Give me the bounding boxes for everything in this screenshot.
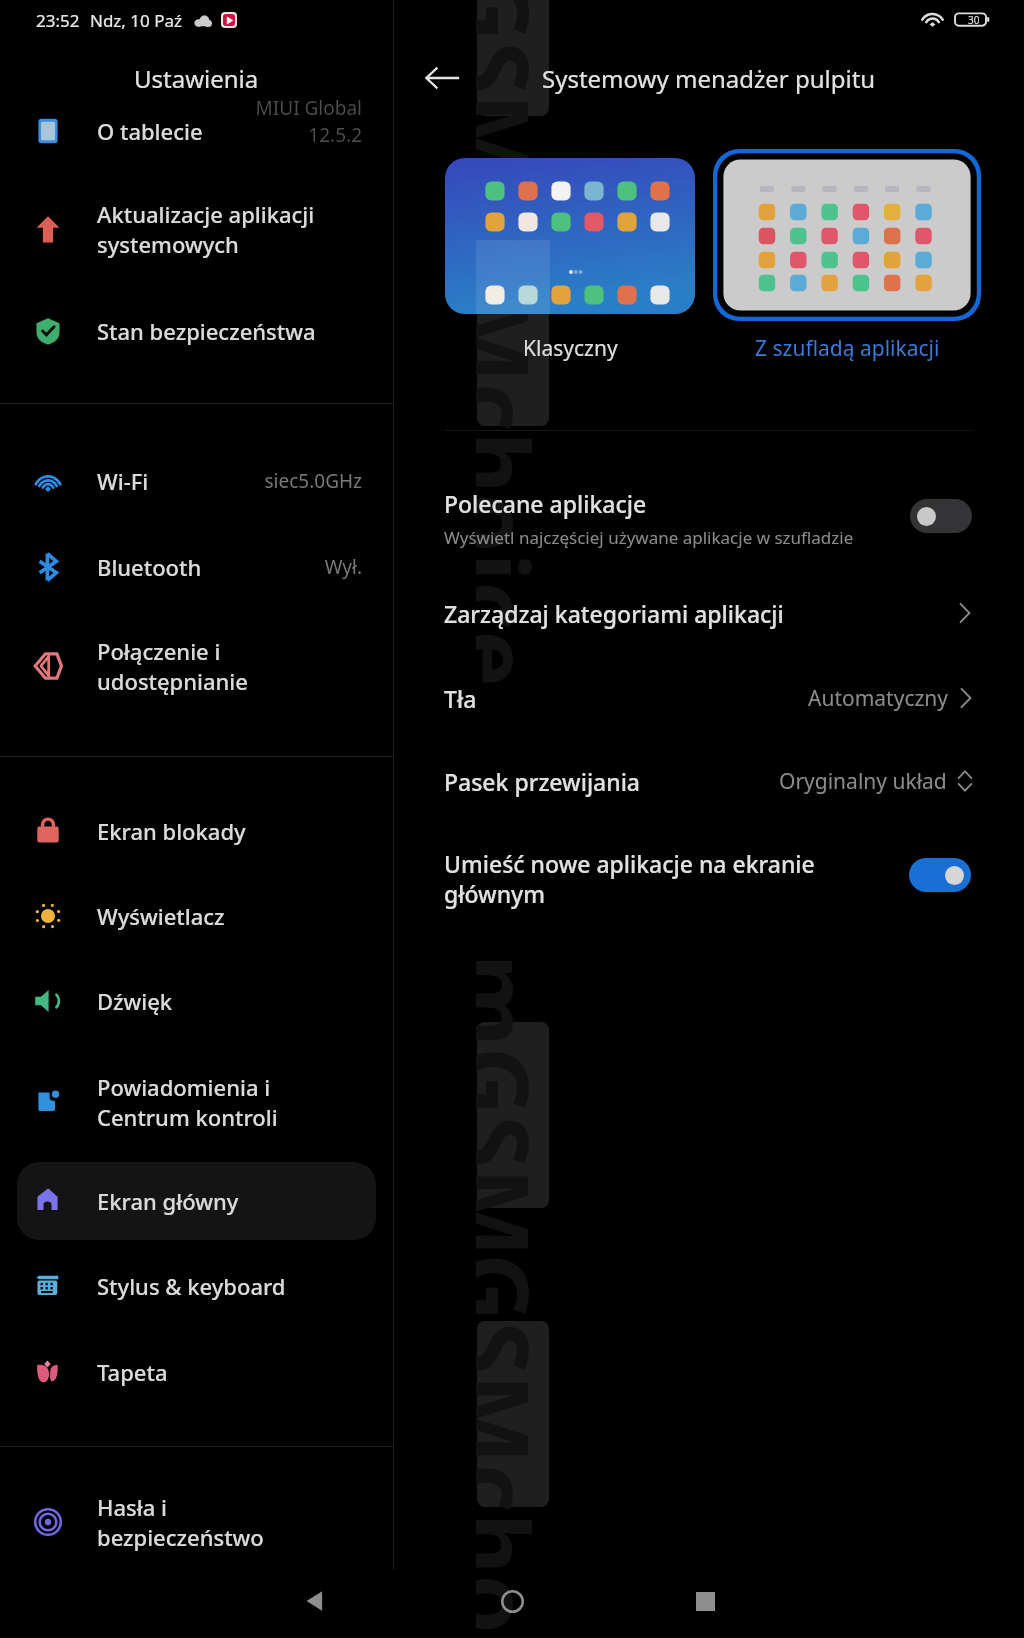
staticText: Oryginalny układ (779, 767, 947, 796)
staticText: 30 (968, 13, 980, 27)
staticText: GSMchoice (476, 1253, 562, 1638)
staticText: Tapeta (97, 1357, 362, 1387)
button[interactable]: Ekran blokady (17, 792, 376, 870)
staticText: Ndz, 10 Paź (90, 9, 183, 32)
button[interactable]: Dźwięk (17, 962, 376, 1040)
staticText: siec5.0GHz (264, 468, 362, 494)
staticText: Klasyczny (523, 334, 618, 363)
staticText: Umieść nowe aplikacje na ekranie głównym (444, 848, 815, 910)
button[interactable]: Hasła i bezpieczeństwo (17, 1483, 376, 1561)
staticText: Wi-Fi (97, 466, 264, 496)
staticText: Wyświetl najczęściej używane aplikacje w… (444, 526, 854, 549)
button[interactable]: Bluetooth (17, 528, 376, 606)
button[interactable]: Ekran główny (17, 1162, 376, 1240)
staticText: O tablecie (97, 116, 255, 146)
button[interactable]: Tła (394, 663, 1024, 733)
staticText: Zarządzaj kategoriami aplikacji (444, 598, 784, 629)
staticText: Bluetooth (97, 552, 324, 582)
staticText: mGSM (476, 0, 562, 184)
button[interactable]: Stylus & keyboard (17, 1247, 376, 1325)
staticText: Powiadomienia i Centrum kontroli (97, 1072, 362, 1133)
staticText: MIUI Global 12.5.2 (255, 95, 362, 148)
button[interactable]: Pasek przewijania (394, 746, 1024, 816)
staticText: Hasła i bezpieczeństwo (97, 1492, 362, 1553)
staticText: Dźwięk (97, 986, 362, 1016)
staticText: Tła (444, 683, 477, 714)
button[interactable]: Zarządzaj kategoriami aplikacji (394, 578, 1024, 648)
button[interactable]: Aktualizacje aplikacji systemowych (17, 190, 376, 268)
button[interactable]: Połączenie i udostępnianie (17, 627, 376, 705)
staticText: Stylus & keyboard (97, 1271, 362, 1301)
staticText: Z szufladą aplikacji (755, 334, 940, 363)
staticText: Automatyczny (808, 684, 949, 713)
staticText: Ekran główny (97, 1186, 362, 1216)
button[interactable]: Recents (679, 1575, 731, 1627)
button[interactable]: Back (288, 1575, 340, 1627)
staticText: Połączenie i udostępnianie (97, 636, 362, 697)
staticText: Pasek przewijania (444, 766, 641, 797)
button[interactable]: Umieść nowe aplikacje na ekranie głównym (394, 832, 1024, 922)
button[interactable]: Home (486, 1575, 538, 1627)
staticText: Stan bezpieczeństwa (97, 316, 362, 346)
staticText: Ekran blokady (97, 816, 362, 846)
staticText: Systemowy menadżer pulpitu (542, 62, 876, 95)
button[interactable]: Wi-Fi (17, 442, 376, 520)
staticText: Aktualizacje aplikacji systemowych (97, 199, 362, 260)
button[interactable]: Polecane aplikacje (394, 472, 1024, 558)
button[interactable]: Klasyczny (445, 158, 695, 363)
staticText: Wył. (324, 554, 362, 580)
staticText: mGSM (476, 954, 562, 1258)
button[interactable]: O tablecie (17, 92, 376, 170)
staticText: Polecane aplikacje (444, 488, 647, 519)
staticText: Wyświetlacz (97, 901, 362, 931)
button[interactable]: Z szufladą aplikacji (713, 149, 981, 363)
staticText: 23:52 (36, 9, 80, 32)
button[interactable]: Tapeta (17, 1333, 376, 1411)
button[interactable]: Stan bezpieczeństwa (17, 292, 376, 370)
button[interactable]: Powiadomienia i Centrum kontroli (17, 1063, 376, 1141)
button[interactable]: On (909, 858, 971, 892)
staticText: Ustawienia (134, 62, 259, 95)
button[interactable]: Wyświetlacz (17, 877, 376, 955)
staticText: GSMchoice (476, 172, 562, 687)
button[interactable]: Off (910, 499, 972, 533)
button[interactable]: Back (414, 50, 470, 106)
